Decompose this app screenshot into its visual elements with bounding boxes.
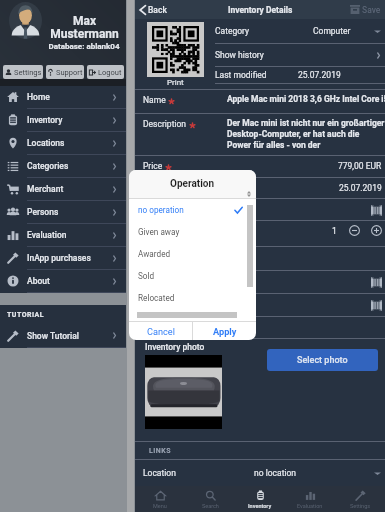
button[interactable]: Scan barcode xyxy=(135,294,385,316)
button[interactable]: Amount xyxy=(135,221,385,246)
button[interactable]: Save xyxy=(344,0,385,19)
staticText: Search xyxy=(202,503,219,509)
button[interactable]: Description xyxy=(135,114,385,155)
button[interactable]: Name xyxy=(135,90,385,113)
button[interactable]: Price xyxy=(135,156,385,177)
button[interactable]: Back xyxy=(135,0,173,19)
staticText: Relocated xyxy=(138,293,175,303)
button[interactable]: Search xyxy=(185,486,235,512)
button[interactable]: Settings xyxy=(335,486,385,512)
staticText: Description xyxy=(143,119,187,129)
staticText: 25.07.2019 xyxy=(339,183,382,193)
staticText: Select photo xyxy=(297,355,348,366)
button[interactable]: Logout xyxy=(87,65,124,79)
staticText: Purchase date xyxy=(143,183,198,193)
staticText: Cancel xyxy=(147,326,175,337)
staticText: Menu xyxy=(153,503,167,509)
staticText: Serial number xyxy=(143,204,196,214)
button[interactable]: Select photo xyxy=(267,349,378,371)
button[interactable]: Show history xyxy=(215,44,385,66)
button[interactable] xyxy=(135,247,385,270)
button[interactable]: Inventory xyxy=(0,109,126,131)
button[interactable]: Inventory xyxy=(235,486,285,512)
button[interactable]: Scan barcode xyxy=(135,271,385,293)
button[interactable]: Home xyxy=(0,86,126,108)
button[interactable]: Show Tutorial xyxy=(0,324,126,347)
staticText: Sold xyxy=(138,271,155,281)
button[interactable]: Persons xyxy=(0,201,126,223)
button[interactable]: Serial number xyxy=(135,199,385,220)
button[interactable]: InApp purchases xyxy=(0,247,126,269)
button[interactable]: Scan barcode xyxy=(371,277,382,288)
button[interactable]: Settings xyxy=(3,65,43,79)
staticText: Price xyxy=(143,161,163,171)
staticText: no operation xyxy=(138,205,184,215)
button[interactable]: Scan barcode xyxy=(371,205,382,216)
staticText: LINKS xyxy=(149,447,172,455)
staticText: Apply xyxy=(213,326,237,337)
staticText: Computer xyxy=(313,26,351,36)
staticText: Show Tutorial xyxy=(27,331,112,341)
staticText: Max Mustermann xyxy=(50,14,119,41)
staticText: Home xyxy=(27,92,112,102)
button[interactable]: Menu xyxy=(135,486,185,512)
button[interactable]: Support xyxy=(46,65,84,79)
staticText: Given away xyxy=(138,227,180,237)
button[interactable]: About xyxy=(0,270,126,292)
staticText: Operation xyxy=(170,178,215,190)
button[interactable]: Increase xyxy=(371,225,382,236)
button[interactable]: Awarded xyxy=(129,243,256,265)
staticText: Awarded xyxy=(138,249,171,259)
staticText: Last modified xyxy=(215,70,267,80)
button[interactable]: Purchase date xyxy=(135,178,385,198)
staticText: About xyxy=(27,276,112,286)
staticText: Location xyxy=(143,468,176,478)
button[interactable]: Cancel xyxy=(129,322,192,340)
button[interactable]: Categories xyxy=(0,155,126,177)
staticText: 1 xyxy=(332,226,337,236)
button[interactable] xyxy=(147,22,204,77)
staticText: Inventory xyxy=(248,503,272,509)
button[interactable]: Location xyxy=(135,460,385,486)
staticText: Show history xyxy=(215,50,264,60)
button[interactable]: Last modified xyxy=(215,67,385,83)
staticText: Inventory photo xyxy=(145,342,205,352)
button[interactable]: Evaluation xyxy=(0,224,126,246)
button[interactable]: Locations xyxy=(0,132,126,154)
staticText: Persons xyxy=(27,207,112,217)
staticText: Locations xyxy=(27,138,112,148)
staticText: Print xyxy=(167,78,184,87)
staticText: InApp purchases xyxy=(27,253,112,263)
button[interactable]: Decrease xyxy=(349,225,360,236)
staticText: Settings xyxy=(14,68,42,77)
staticText: 779,00 EUR xyxy=(338,161,382,171)
staticText: Inventory Details xyxy=(228,5,293,15)
button[interactable]: no operation xyxy=(129,199,256,221)
staticText: 25.07.2019 xyxy=(298,70,341,80)
staticText: Evaluation xyxy=(297,503,323,509)
button[interactable]: Evaluation xyxy=(285,486,335,512)
button[interactable]: Scan barcode xyxy=(371,300,382,311)
staticText: Merchant xyxy=(27,184,112,194)
button[interactable]: Sold xyxy=(129,265,256,287)
staticText: Inventory xyxy=(27,115,112,125)
button[interactable]: Category xyxy=(215,19,385,43)
staticText: Support xyxy=(56,68,83,77)
button[interactable] xyxy=(135,317,385,338)
staticText: Amount xyxy=(143,226,174,236)
staticText: Name xyxy=(143,95,166,105)
staticText: TUTORIAL xyxy=(7,311,45,319)
staticText: Back xyxy=(148,5,167,15)
staticText: Apple Mac mini 2018 3,6 GHz Intel Core i… xyxy=(227,94,385,104)
staticText: Save xyxy=(362,5,381,15)
staticText: Database: ablank04 xyxy=(48,42,120,51)
staticText: Categories xyxy=(27,161,112,171)
staticText: Settings xyxy=(350,503,371,509)
button[interactable]: Apply xyxy=(193,322,256,340)
button[interactable]: Relocated xyxy=(129,287,256,309)
button[interactable]: Merchant xyxy=(0,178,126,200)
staticText: Der Mac mini ist nicht nur ein großartig… xyxy=(227,118,385,150)
button[interactable]: Given away xyxy=(129,221,256,243)
other: Save xyxy=(350,5,360,14)
staticText: Category xyxy=(215,26,250,36)
